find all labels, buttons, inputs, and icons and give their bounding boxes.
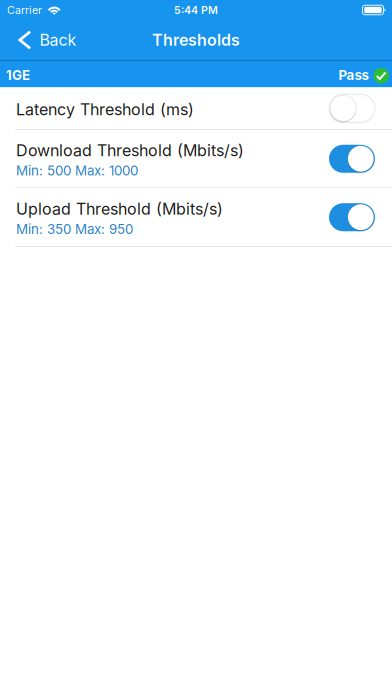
staticText: Latency Threshold (ms): [16, 100, 194, 119]
staticText: Upload Threshold (Mbits/s): [16, 199, 223, 219]
button[interactable]: Latency Threshold (ms): [0, 87, 392, 129]
staticText: Back: [40, 30, 77, 50]
button[interactable]: Download Threshold (Mbits/s): [0, 130, 392, 187]
button[interactable]: Upload Threshold (Mbits/s): [0, 188, 392, 246]
staticText: Download Threshold (Mbits/s): [16, 141, 244, 160]
staticText: Pass: [338, 67, 368, 83]
staticText: 1GE: [6, 67, 30, 83]
staticText: Min: 500 Max: 1000: [16, 163, 138, 179]
button[interactable]: Back: [0, 20, 89, 60]
staticText: Min: 350 Max: 950: [16, 221, 133, 237]
staticText: Carrier: [7, 3, 42, 16]
staticText: 5:44 PM: [174, 3, 218, 16]
staticText: Thresholds: [152, 30, 240, 50]
